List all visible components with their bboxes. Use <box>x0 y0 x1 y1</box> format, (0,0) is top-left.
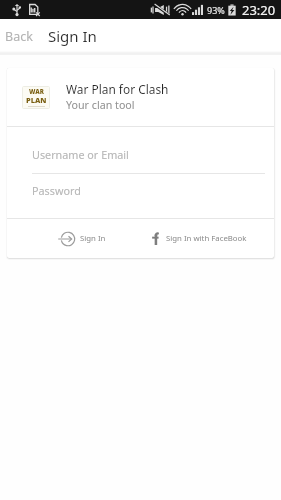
staticText: 23:20 <box>242 1 276 19</box>
staticText: WAR <box>29 87 44 95</box>
button[interactable]: Username or Email <box>7 127 274 174</box>
staticText: War Plan for Clash <box>66 81 169 97</box>
staticText: Sign In <box>80 233 106 244</box>
staticText: PLAN <box>26 95 47 105</box>
staticText: Sign In with FaceBook <box>166 233 247 244</box>
staticText: Your clan tool <box>66 98 135 113</box>
staticText: Username or Email <box>32 147 129 162</box>
staticText: Back <box>5 28 33 45</box>
other: Sign In <box>59 231 75 247</box>
other: Sign In with Facebook <box>152 232 159 245</box>
button[interactable]: Password <box>7 174 274 218</box>
staticText: Sign In <box>48 26 97 46</box>
button[interactable]: Sign In with Facebook <box>134 219 274 258</box>
staticText: 93% <box>207 4 225 16</box>
button[interactable]: Sign In <box>7 219 124 258</box>
button[interactable]: Back <box>0 23 38 50</box>
staticText: Password <box>32 183 81 198</box>
